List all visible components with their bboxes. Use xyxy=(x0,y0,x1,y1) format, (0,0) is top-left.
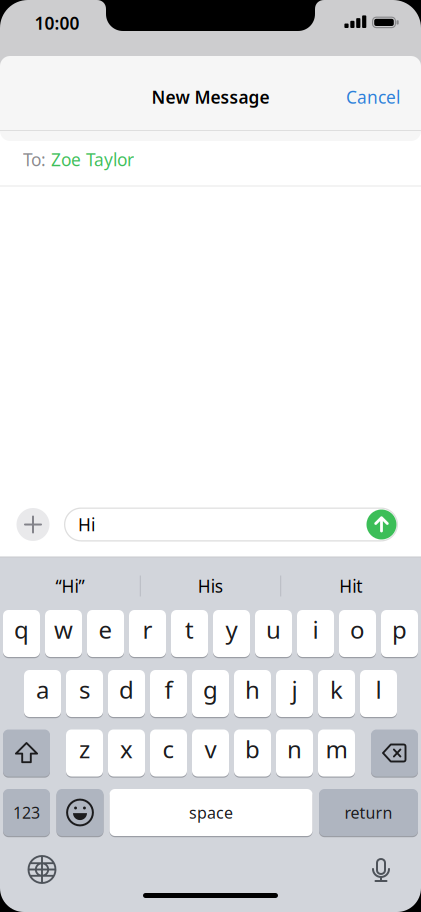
button[interactable]: Delete xyxy=(371,729,418,776)
button[interactable]: y xyxy=(213,610,250,657)
button[interactable]: return xyxy=(319,789,418,836)
button[interactable]: i xyxy=(297,610,334,657)
button[interactable]: f xyxy=(150,670,187,717)
staticText: To: xyxy=(23,148,46,171)
staticText: z xyxy=(79,733,90,765)
button[interactable]: n xyxy=(276,729,313,776)
button[interactable]: t xyxy=(171,610,208,657)
button[interactable]: u xyxy=(255,610,292,657)
staticText: 123 xyxy=(13,802,40,823)
staticText: m xyxy=(325,733,347,765)
button[interactable]: Cancel xyxy=(346,85,400,108)
button[interactable]: o xyxy=(339,610,376,657)
button[interactable]: z xyxy=(66,729,103,776)
button[interactable]: Message text field xyxy=(64,507,398,541)
staticText: k xyxy=(330,674,343,705)
staticText: “Hi” xyxy=(55,574,84,597)
button[interactable]: “Hi” xyxy=(0,563,140,609)
staticText: b xyxy=(245,733,260,765)
button[interactable]: Shift xyxy=(3,729,50,776)
staticText: p xyxy=(392,614,407,645)
staticText: a xyxy=(36,674,49,705)
button[interactable]: s xyxy=(66,670,103,717)
button[interactable]: r xyxy=(129,610,166,657)
staticText: q xyxy=(14,614,29,645)
staticText: i xyxy=(312,614,318,645)
button[interactable]: g xyxy=(192,670,229,717)
staticText: w xyxy=(54,614,73,645)
staticText: Zoe Taylor xyxy=(51,148,134,171)
button[interactable]: His xyxy=(140,563,280,609)
button[interactable]: j xyxy=(276,670,313,717)
button[interactable]: b xyxy=(234,729,271,776)
staticText: y xyxy=(225,614,237,645)
button[interactable]: m xyxy=(318,729,355,776)
staticText: n xyxy=(287,733,302,765)
staticText: d xyxy=(119,674,134,705)
staticText: New Message xyxy=(151,85,269,108)
staticText: t xyxy=(185,614,194,645)
staticText: r xyxy=(142,614,152,645)
staticText: x xyxy=(120,733,133,765)
staticText: e xyxy=(98,614,112,645)
staticText: Hi xyxy=(78,513,95,536)
button[interactable]: Dictation xyxy=(359,847,403,891)
staticText: h xyxy=(245,674,260,705)
button[interactable]: To: xyxy=(0,132,421,186)
button[interactable]: c xyxy=(150,729,187,776)
staticText: v xyxy=(204,733,216,765)
button[interactable]: k xyxy=(318,670,355,717)
button[interactable]: l xyxy=(360,670,397,717)
staticText: o xyxy=(350,614,365,645)
button[interactable]: h xyxy=(234,670,271,717)
button[interactable]: Hit xyxy=(280,563,421,609)
button[interactable]: e xyxy=(87,610,124,657)
button[interactable]: space xyxy=(109,789,312,836)
button[interactable]: x xyxy=(108,729,145,776)
staticText: l xyxy=(375,674,381,705)
staticText: j xyxy=(291,674,297,705)
button[interactable]: 123 xyxy=(3,789,50,836)
staticText: Cancel xyxy=(346,85,400,108)
staticText: return xyxy=(344,802,392,823)
staticText: f xyxy=(164,674,172,705)
button[interactable]: p xyxy=(381,610,418,657)
staticText: 10:00 xyxy=(34,11,79,34)
button[interactable]: d xyxy=(108,670,145,717)
button[interactable]: q xyxy=(3,610,40,657)
button[interactable]: v xyxy=(192,729,229,776)
button[interactable]: Next keyboard xyxy=(20,847,64,891)
button[interactable]: w xyxy=(45,610,82,657)
staticText: c xyxy=(162,733,174,765)
staticText: g xyxy=(203,674,218,705)
button[interactable]: a xyxy=(24,670,61,717)
staticText: space xyxy=(189,802,233,823)
staticText: u xyxy=(266,614,281,645)
button[interactable]: Emoji xyxy=(56,789,103,836)
button[interactable]: Send xyxy=(366,509,396,539)
staticText: s xyxy=(79,674,90,705)
staticText: His xyxy=(198,574,223,597)
staticText: Hit xyxy=(339,574,362,597)
button[interactable]: Apps xyxy=(16,508,49,541)
